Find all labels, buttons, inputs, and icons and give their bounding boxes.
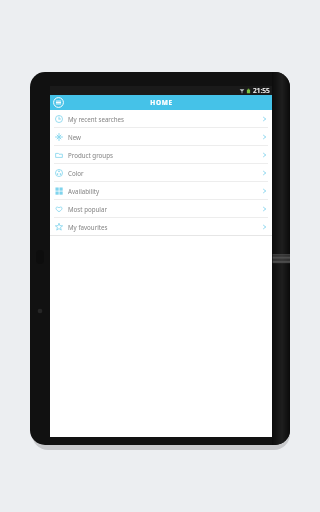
button[interactable]: Product groups xyxy=(50,146,272,163)
staticText: Color xyxy=(68,169,84,177)
button[interactable]: My favourites xyxy=(50,218,272,235)
staticText: 21:55 xyxy=(253,86,270,95)
staticText: Availability xyxy=(68,187,100,195)
button[interactable]: Open navigation drawer xyxy=(52,96,65,109)
staticText: New xyxy=(68,133,81,141)
button[interactable]: Color xyxy=(50,164,272,181)
staticText: Product groups xyxy=(68,151,113,159)
button[interactable]: Most popular xyxy=(50,200,272,217)
button[interactable]: My recent searches xyxy=(50,110,272,127)
button[interactable]: Availability xyxy=(50,182,272,199)
staticText: HOME xyxy=(150,98,173,107)
staticText: My recent searches xyxy=(68,115,125,123)
staticText: Most popular xyxy=(68,205,107,213)
staticText: My favourites xyxy=(68,223,108,231)
button[interactable]: New xyxy=(50,128,272,145)
